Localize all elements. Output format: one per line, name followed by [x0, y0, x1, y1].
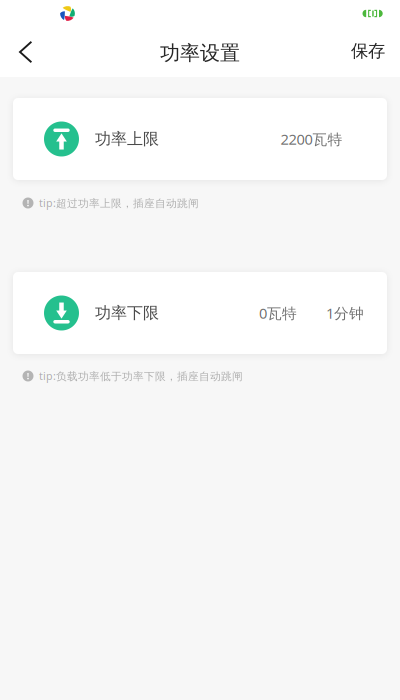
staticText: 保存: [351, 40, 385, 62]
button[interactable]: 功率下限: [13, 272, 387, 354]
button[interactable]: 保存: [337, 27, 400, 77]
staticText: 1分钟: [326, 303, 364, 323]
staticText: 功率设置: [160, 41, 240, 65]
button[interactable]: Back: [0, 27, 46, 77]
staticText: 0瓦特: [259, 303, 297, 323]
staticText: 2200瓦特: [280, 129, 342, 149]
staticText: tip:超过功率上限，插座自动跳闸: [39, 196, 199, 210]
staticText: tip:负载功率低于功率下限，插座自动跳闸: [39, 369, 243, 383]
button[interactable]: 功率上限: [13, 98, 387, 180]
staticText: 功率下限: [95, 303, 159, 323]
staticText: 功率上限: [95, 129, 159, 149]
